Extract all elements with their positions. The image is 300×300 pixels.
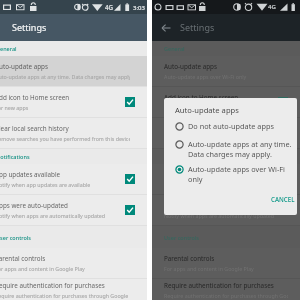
- staticText: Require authentication for purchases: [0, 281, 105, 290]
- button[interactable]: Clear local search history: [152, 118, 300, 148]
- staticText: Notify when apps are automatically updat…: [164, 212, 275, 219]
- staticText: Auto-update apps at any time.: [188, 139, 292, 149]
- staticText: Add icon to Home screen: [0, 93, 70, 102]
- button[interactable]: Auto-update apps at any time.: [173, 137, 297, 161]
- staticText: 3:03: [133, 4, 145, 12]
- staticText: Require authentication for purchases: [164, 281, 274, 290]
- button[interactable]: Parental controls: [152, 248, 300, 278]
- staticText: CANCEL: [271, 195, 295, 203]
- staticText: Notify when apps are automatically updat…: [0, 212, 106, 219]
- staticText: Clear local search history: [164, 124, 238, 133]
- button[interactable]: Auto-update apps: [0, 56, 147, 86]
- staticText: Remove searches you have performed from …: [0, 135, 130, 142]
- button[interactable]: Parental controls: [0, 248, 147, 278]
- button[interactable]: Apps were auto-updated: [0, 195, 147, 225]
- button[interactable]: Require authentication for purchases: [0, 279, 147, 300]
- staticText: Notifications: [0, 153, 30, 160]
- button[interactable]: Do not auto-update apps: [173, 119, 297, 133]
- staticText: Clear local search history: [0, 124, 69, 133]
- staticText: Settings: [12, 21, 47, 33]
- staticText: Notify when app updates are available: [0, 181, 91, 188]
- staticText: 4G: [268, 3, 276, 11]
- button[interactable]: Require authentication for purchases: [152, 279, 300, 300]
- button[interactable]: CANCEL: [265, 191, 297, 215]
- staticText: General: [0, 45, 17, 52]
- button[interactable]: Back: [161, 23, 171, 33]
- staticText: Settings: [180, 21, 215, 33]
- staticText: Parental controls: [164, 254, 215, 263]
- button[interactable]: Apps were auto-updated: [152, 195, 300, 225]
- staticText: Do not auto-update apps: [188, 121, 274, 131]
- staticText: For new apps: [164, 104, 198, 111]
- staticText: Remove searches you have performed from …: [164, 135, 288, 142]
- staticText: only: [188, 174, 203, 184]
- staticText: For new apps: [0, 104, 29, 111]
- button[interactable]: Clear local search history: [0, 118, 147, 148]
- staticText: 4G: [105, 3, 114, 11]
- staticText: Auto-update apps over Wi-Fi: [188, 164, 285, 174]
- staticText: Add icon to Home screen: [164, 93, 239, 102]
- staticText: User controls: [164, 234, 199, 241]
- button[interactable]: App updates available: [0, 164, 147, 194]
- staticText: Auto-update apps at any time. Data charg…: [0, 73, 130, 80]
- button[interactable]: Add icon to Home screen: [152, 87, 300, 117]
- staticText: For apps and content in Google Play: [0, 265, 85, 272]
- staticText: Require authentication for purchases thr…: [164, 292, 288, 299]
- staticText: App updates available: [164, 170, 230, 179]
- button[interactable]: Add icon to Home screen: [0, 87, 147, 117]
- staticText: App updates available: [0, 170, 61, 179]
- staticText: Parental controls: [0, 254, 46, 263]
- staticText: User controls: [0, 234, 31, 241]
- staticText: Require authentication for purchases thr…: [0, 292, 130, 299]
- staticText: Notify when app updates are available: [164, 181, 260, 188]
- button[interactable]: Auto-update apps over Wi-Fi: [173, 162, 297, 186]
- button[interactable]: Auto-update apps: [152, 56, 300, 86]
- staticText: Auto-update apps: [175, 105, 239, 115]
- staticText: For apps and content in Google Play: [164, 265, 254, 272]
- staticText: Auto-update apps: [0, 62, 48, 71]
- staticText: Auto-update apps: [164, 62, 217, 71]
- staticText: Auto-update apps over Wi-Fi only: [164, 73, 247, 80]
- button[interactable]: App updates available: [152, 164, 300, 194]
- staticText: General: [164, 45, 185, 52]
- staticText: Apps were auto-updated: [0, 201, 68, 210]
- staticText: Notifications: [164, 153, 198, 160]
- staticText: Data charges may apply.: [188, 149, 272, 159]
